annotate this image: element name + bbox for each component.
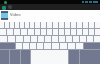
staticText: Video	[10, 12, 21, 17]
button[interactable]: Profile	[8, 5, 12, 9]
button[interactable]: Video thumbnail	[1, 11, 8, 20]
button[interactable]: Back	[1, 5, 6, 10]
